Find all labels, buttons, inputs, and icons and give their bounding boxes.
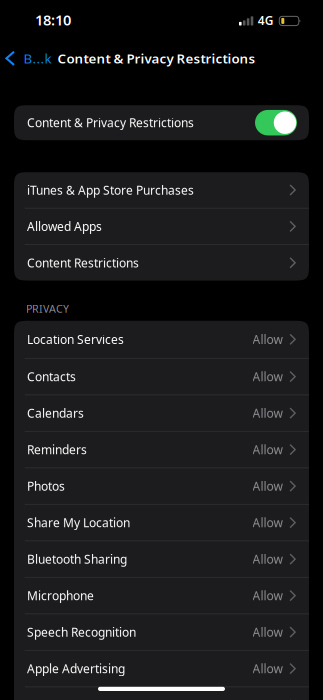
button[interactable]: Content Restrictions bbox=[14, 245, 309, 281]
staticText: Calendars bbox=[27, 405, 84, 421]
staticText: Apple Advertising bbox=[27, 661, 125, 676]
button[interactable]: Media & Apple Music bbox=[14, 687, 309, 700]
staticText: Photos bbox=[27, 478, 65, 494]
button[interactable]: Microphone bbox=[14, 578, 309, 613]
button[interactable]: Calendars bbox=[14, 395, 309, 431]
staticText: iTunes & App Store Purchases bbox=[27, 182, 194, 198]
staticText: Bluetooth Sharing bbox=[27, 551, 127, 567]
staticText: Content & Privacy Restrictions bbox=[27, 115, 194, 131]
staticText: Share My Location bbox=[27, 515, 130, 530]
staticText: Content & Privacy Restrictions bbox=[57, 49, 255, 67]
staticText: Allow bbox=[253, 405, 283, 421]
staticText: Allow bbox=[253, 478, 283, 494]
staticText: 4G bbox=[258, 12, 274, 28]
button[interactable]: Location Services bbox=[14, 321, 309, 358]
staticText: Allow bbox=[253, 369, 283, 384]
staticText: Allow bbox=[253, 551, 283, 567]
staticText: Content Restrictions bbox=[27, 255, 139, 271]
staticText: PRIVACY bbox=[26, 302, 69, 316]
button[interactable]: Photos bbox=[14, 468, 309, 504]
staticText: Allow bbox=[253, 588, 283, 603]
staticText: Allow bbox=[253, 331, 283, 347]
button[interactable]: B...k bbox=[0, 49, 51, 67]
button[interactable]: Apple Advertising bbox=[14, 651, 309, 686]
staticText: Allow bbox=[253, 442, 283, 457]
button[interactable]: Allowed Apps bbox=[14, 209, 309, 244]
staticText: 18:10 bbox=[35, 10, 71, 29]
staticText: Allow bbox=[253, 661, 283, 676]
button[interactable]: Contacts bbox=[14, 359, 309, 394]
button[interactable]: Reminders bbox=[14, 432, 309, 467]
button[interactable]: iTunes & App Store Purchases bbox=[14, 172, 309, 208]
staticText: Speech Recognition bbox=[27, 624, 136, 640]
staticText: Reminders bbox=[27, 442, 87, 457]
staticText: Microphone bbox=[27, 588, 94, 603]
staticText: Location Services bbox=[27, 331, 124, 347]
staticText: Contacts bbox=[27, 369, 76, 384]
staticText: Allow bbox=[253, 515, 283, 530]
button[interactable]: Speech Recognition bbox=[14, 614, 309, 650]
staticText: Allow bbox=[253, 624, 283, 640]
staticText: B...k bbox=[23, 49, 51, 67]
staticText: Allowed Apps bbox=[27, 218, 102, 234]
button[interactable]: Share My Location bbox=[14, 505, 309, 540]
button[interactable]: Bluetooth Sharing bbox=[14, 541, 309, 577]
button[interactable]: Content & Privacy Restrictions toggle bbox=[255, 110, 297, 135]
